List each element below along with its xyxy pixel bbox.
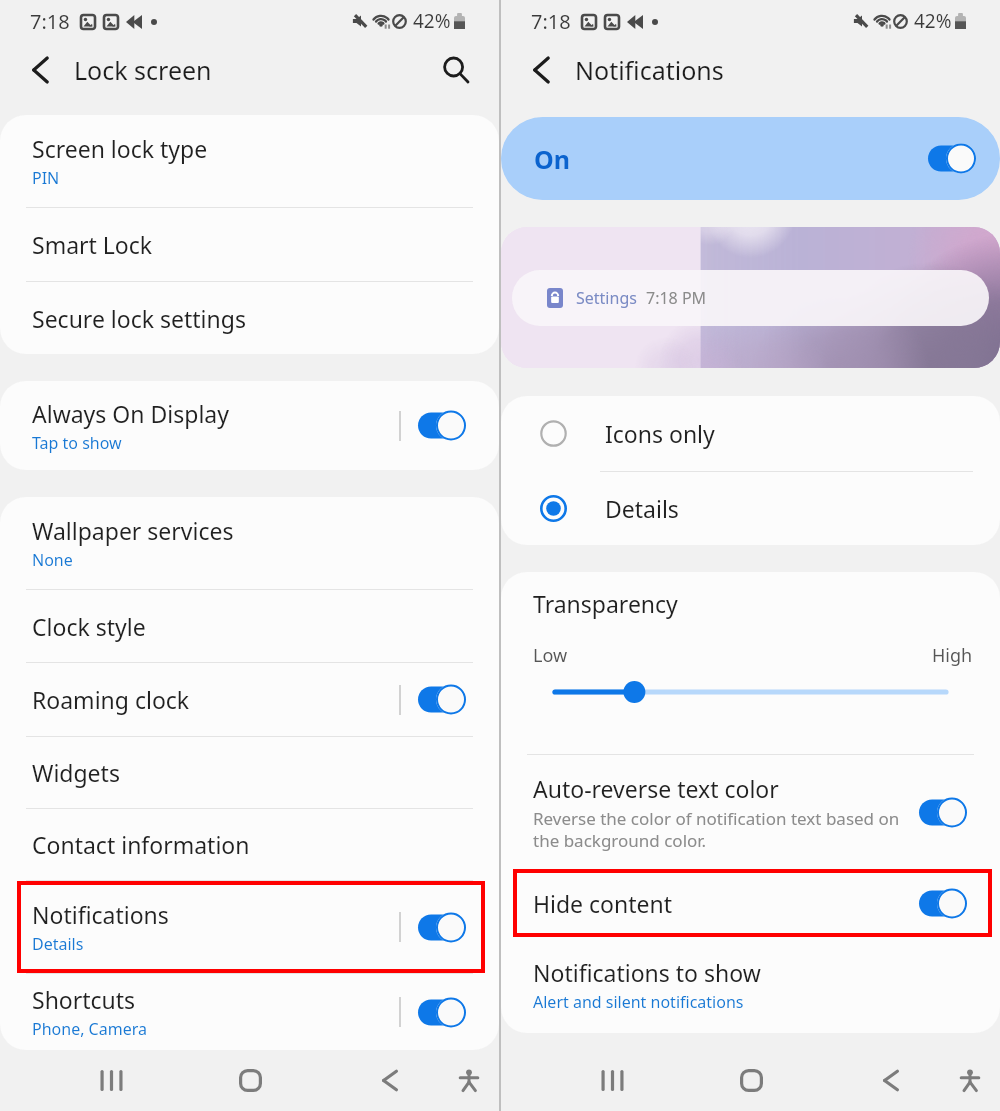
button[interactable]: Contact information — [0, 809, 499, 880]
staticText: Clock style — [32, 611, 146, 642]
button[interactable]: Search — [441, 55, 471, 85]
staticText: PIN — [32, 167, 60, 189]
staticText: 42% — [413, 8, 451, 34]
button[interactable]: Details — [501, 472, 1000, 545]
button[interactable]: Screen lock type — [0, 115, 499, 207]
button[interactable]: Hide content — [501, 869, 1000, 937]
staticText: Hide content — [533, 888, 673, 919]
staticText: Always On Display — [32, 398, 229, 429]
staticText: Notifications — [32, 899, 169, 930]
staticText: Widgets — [32, 757, 120, 788]
staticText: Screen lock type — [32, 133, 208, 164]
staticText: Smart Lock — [32, 229, 153, 260]
button[interactable]: Settings — [512, 270, 989, 326]
button[interactable]: Roaming clock — [0, 663, 499, 736]
staticText: Shortcuts — [32, 984, 136, 1015]
button[interactable]: Widgets — [0, 737, 499, 808]
button[interactable]: Wallpaper services — [0, 497, 499, 589]
staticText: Auto-reverse text color — [533, 773, 779, 804]
button[interactable]: Back — [320, 1050, 459, 1111]
button[interactable]: Home — [181, 1050, 320, 1111]
staticText: 7:18 PM — [646, 287, 707, 309]
staticText: High — [932, 643, 973, 668]
button[interactable]: Clock style — [0, 590, 499, 662]
button[interactable]: Always On Display — [0, 381, 499, 470]
staticText: Details — [605, 493, 679, 524]
button[interactable]: Accessibility — [459, 1050, 479, 1111]
button[interactable]: On — [501, 117, 1000, 200]
button[interactable]: Auto-reverse text color — [501, 755, 1000, 869]
staticText: Lock screen — [74, 53, 212, 87]
staticText: 7:18 — [30, 8, 70, 35]
staticText: Low — [533, 643, 568, 668]
button[interactable]: Navigate up — [28, 57, 54, 83]
staticText: Settings — [576, 287, 637, 309]
staticText: None — [32, 549, 73, 571]
staticText: Notifications to show — [533, 957, 761, 988]
staticText: 42% — [914, 8, 952, 34]
button[interactable]: Notifications to show — [501, 937, 1000, 1033]
staticText: Roaming clock — [32, 684, 190, 715]
staticText: Notifications — [575, 53, 724, 87]
button[interactable]: Recents — [543, 1050, 682, 1111]
button[interactable]: Accessibility — [960, 1050, 980, 1111]
button[interactable]: Transparency slider — [533, 678, 973, 706]
button[interactable]: Recents — [42, 1050, 181, 1111]
staticText: 7:18 — [531, 8, 571, 35]
staticText: Wallpaper services — [32, 515, 234, 546]
staticText: Transparency — [533, 588, 678, 619]
button[interactable]: Notifications — [0, 881, 499, 973]
button[interactable]: Shortcuts — [0, 974, 499, 1050]
button[interactable]: Secure lock settings — [0, 282, 499, 354]
button[interactable]: Home — [682, 1050, 821, 1111]
button[interactable]: Navigate up — [529, 57, 555, 83]
staticText: Secure lock settings — [32, 303, 246, 334]
staticText: Icons only — [605, 418, 715, 449]
staticText: Tap to show — [32, 432, 122, 454]
button[interactable]: Smart Lock — [0, 208, 499, 281]
staticText: Contact information — [32, 829, 250, 860]
staticText: On — [534, 142, 571, 176]
staticText: Details — [32, 933, 84, 955]
staticText: Alert and silent notifications — [533, 991, 744, 1013]
button[interactable]: Back — [821, 1050, 960, 1111]
staticText: Phone, Camera — [32, 1018, 147, 1040]
staticText: Reverse the color of notification text b… — [533, 807, 900, 852]
button[interactable]: Icons only — [501, 396, 1000, 471]
